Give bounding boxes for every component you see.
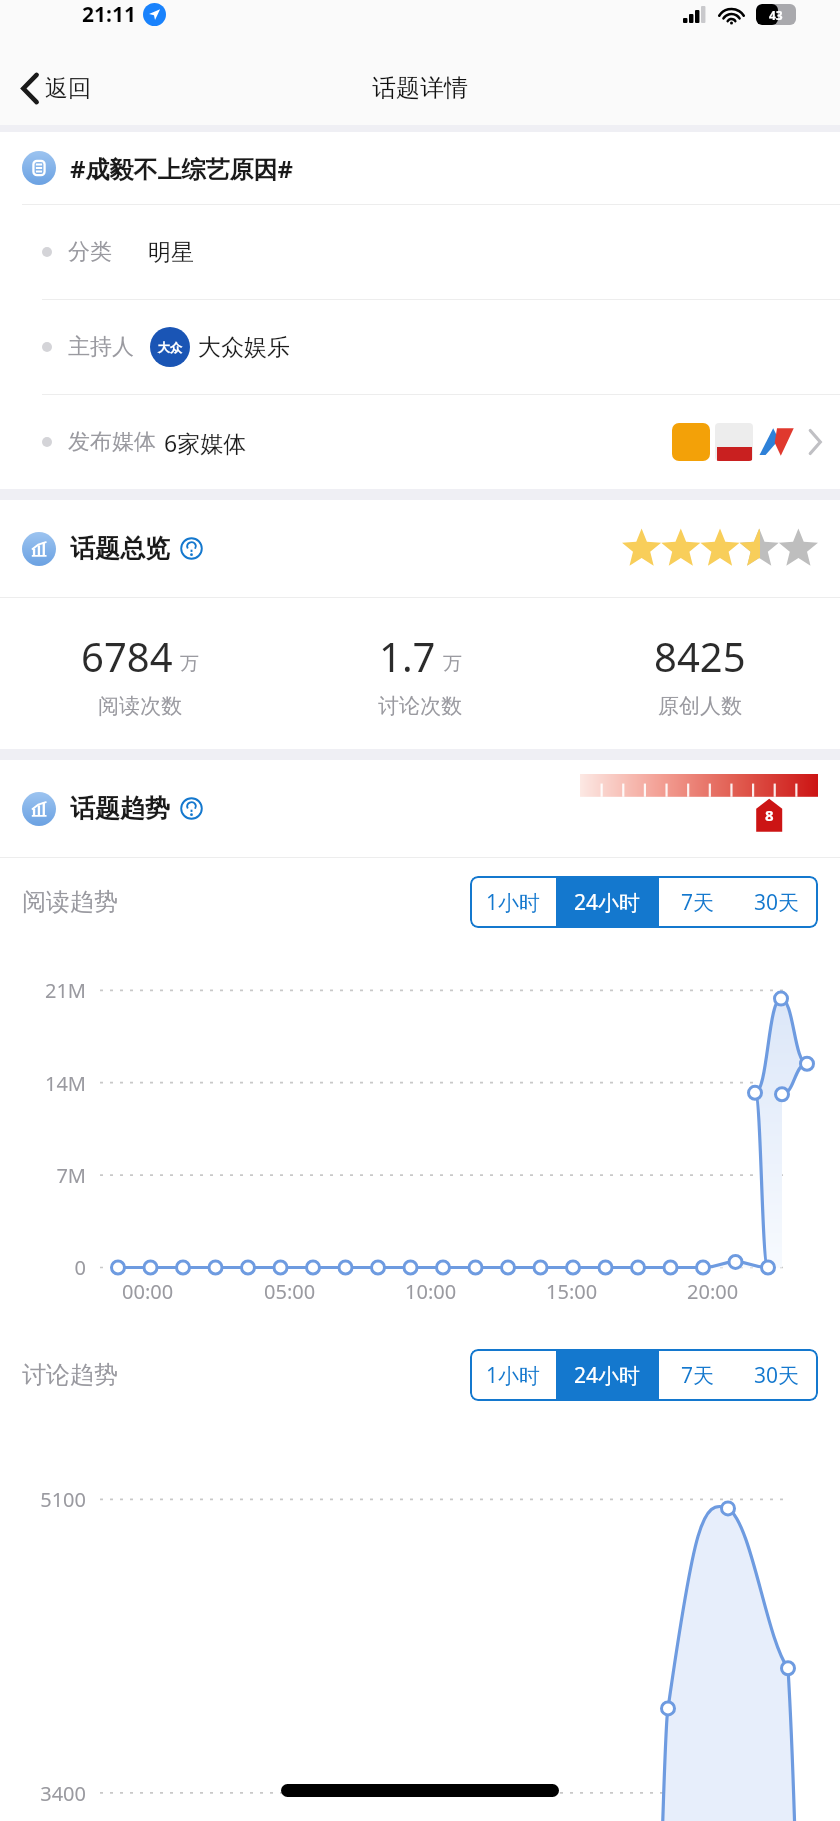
staticText: #成毅不上综艺原因# (70, 152, 294, 185)
staticText: 1小时 (486, 1361, 541, 1390)
staticText: 主持人 (68, 333, 134, 361)
staticText: 发布媒体 (68, 428, 156, 456)
staticText: 43 (769, 7, 783, 23)
staticText: 讨论次数 (378, 693, 462, 719)
staticText: 30天 (754, 888, 800, 917)
staticText: 1小时 (486, 888, 541, 917)
staticText: 15:00 (546, 1278, 598, 1305)
button[interactable]: 发布媒体 (0, 395, 840, 489)
staticText: 24小时 (574, 1361, 641, 1390)
staticText: 1.7 (379, 629, 436, 683)
staticText: 5100 (16, 1486, 86, 1513)
button[interactable]: 24小时 (556, 876, 659, 928)
staticText: 6家媒体 (164, 427, 247, 458)
staticText: 6784 (81, 629, 173, 683)
button[interactable]: 1小时 (470, 1349, 556, 1401)
staticText: 讨论趋势 (22, 1360, 118, 1390)
button[interactable]: 话题总览 (0, 500, 840, 597)
staticText: 0 (16, 1254, 86, 1281)
staticText: 24小时 (574, 888, 641, 917)
staticText: 30天 (754, 1361, 800, 1390)
button[interactable]: 30天 (736, 876, 818, 928)
button[interactable]: 24小时 (556, 1349, 659, 1401)
staticText: 话题详情 (372, 73, 468, 103)
button[interactable]: 话题趋势 (0, 760, 840, 857)
staticText: 8425 (654, 629, 746, 683)
staticText: 21M (16, 977, 86, 1004)
staticText: 返回 (45, 74, 91, 103)
staticText: 05:00 (264, 1278, 316, 1305)
staticText: 10:00 (405, 1278, 457, 1305)
staticText: 3400 (16, 1780, 86, 1807)
staticText: 万 (180, 652, 199, 676)
staticText: 7天 (681, 888, 715, 917)
staticText: 明星 (148, 238, 194, 267)
staticText: 21:11 (82, 0, 136, 29)
staticText: 大众娱乐 (198, 333, 290, 362)
button[interactable]: 返回 (14, 66, 99, 111)
staticText: 阅读趋势 (22, 887, 118, 917)
staticText: 话题趋势 (70, 793, 170, 824)
other: View all media (808, 429, 822, 455)
staticText: 原创人数 (658, 693, 742, 719)
button[interactable]: 7天 (659, 876, 736, 928)
button[interactable]: 30天 (736, 1349, 818, 1401)
staticText: 8 (765, 805, 774, 825)
staticText: 万 (443, 652, 462, 676)
button[interactable]: 1小时 (470, 876, 556, 928)
staticText: 分类 (68, 238, 112, 266)
staticText: 阅读次数 (98, 693, 182, 719)
staticText: 话题总览 (70, 533, 170, 564)
staticText: 7M (16, 1162, 86, 1189)
staticText: 00:00 (122, 1278, 174, 1305)
staticText: 大众 (158, 340, 182, 355)
button[interactable]: #成毅不上综艺原因# (0, 132, 840, 204)
button[interactable]: 7天 (659, 1349, 736, 1401)
staticText: 14M (16, 1070, 86, 1097)
staticText: 20:00 (687, 1278, 739, 1305)
staticText: 7天 (681, 1361, 715, 1390)
